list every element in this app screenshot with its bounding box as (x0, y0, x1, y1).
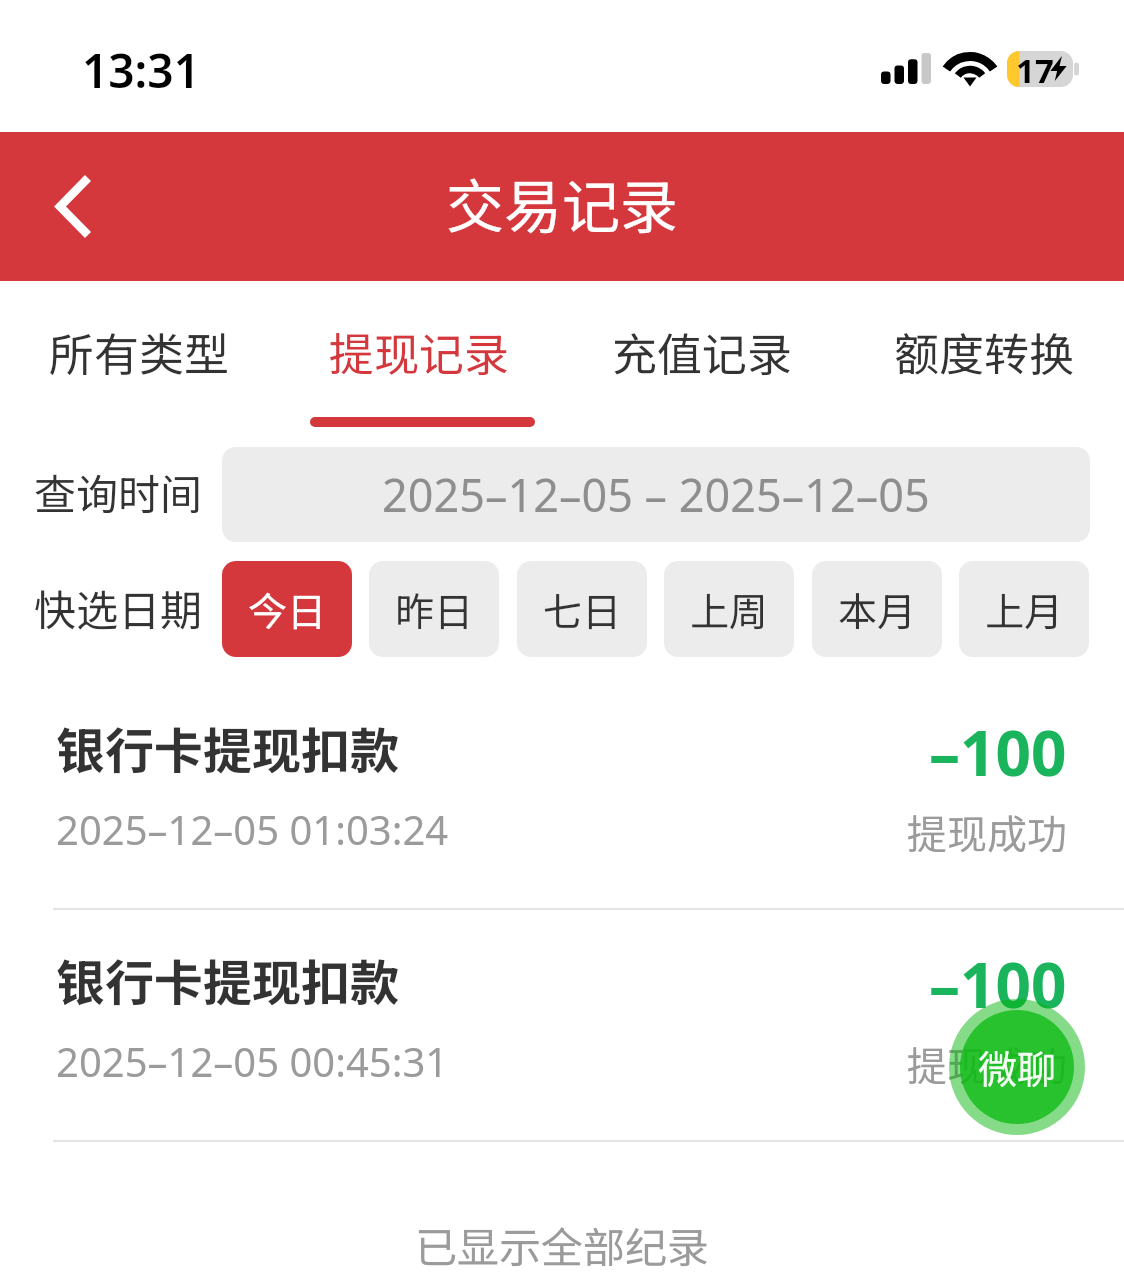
staticText: 已显示全部纪录 (0, 1214, 1124, 1275)
staticText: 2025–12–05 01:03:24 (56, 802, 449, 856)
button[interactable]: 额度转换 (864, 300, 1104, 430)
staticText: 快选日期 (34, 577, 203, 638)
staticText: 交易记录 (446, 161, 679, 245)
staticText: 银行卡提现扣款 (56, 712, 400, 783)
button[interactable]: Back (22, 132, 122, 281)
staticText: 2025–12–05 00:45:31 (56, 1034, 449, 1088)
button[interactable]: 昨日 (369, 561, 499, 657)
button[interactable]: 七日 (517, 561, 647, 657)
button[interactable]: 银行卡提现扣款 (0, 693, 1124, 909)
staticText: 本月 (838, 581, 917, 637)
staticText: –100 (929, 710, 1067, 794)
staticText: 充值记录 (612, 319, 793, 384)
button[interactable]: 上周 (664, 561, 794, 657)
button[interactable]: 本月 (812, 561, 942, 657)
staticText: 今日 (248, 581, 327, 637)
staticText: 提现记录 (329, 319, 510, 384)
staticText: 微聊 (978, 1039, 1057, 1095)
button[interactable]: 微聊 (949, 999, 1085, 1135)
button[interactable]: 提现记录 (299, 300, 539, 430)
button[interactable]: 银行卡提现扣款 (0, 925, 1124, 1141)
button[interactable]: 今日 (222, 561, 352, 657)
staticText: –100 (929, 942, 1067, 1026)
button[interactable]: 上月 (959, 561, 1089, 657)
button[interactable]: 2025–12–05 – 2025–12–05 (222, 447, 1090, 542)
staticText: 额度转换 (894, 319, 1075, 384)
staticText: 上月 (985, 581, 1064, 637)
staticText: 13:31 (82, 39, 200, 102)
staticText: 所有类型 (49, 319, 230, 384)
staticText: 银行卡提现扣款 (56, 944, 400, 1015)
staticText: 昨日 (395, 581, 474, 637)
staticText: 17 (1016, 48, 1054, 93)
staticText: 上周 (690, 581, 769, 637)
staticText: 七日 (543, 581, 622, 637)
button[interactable]: 充值记录 (582, 300, 822, 430)
staticText: 2025–12–05 – 2025–12–05 (382, 464, 930, 525)
button[interactable]: 所有类型 (19, 300, 259, 430)
staticText: 提现成功 (907, 803, 1067, 861)
staticText: 提现成功 (907, 1035, 1067, 1093)
staticText: 查询时间 (34, 461, 203, 522)
